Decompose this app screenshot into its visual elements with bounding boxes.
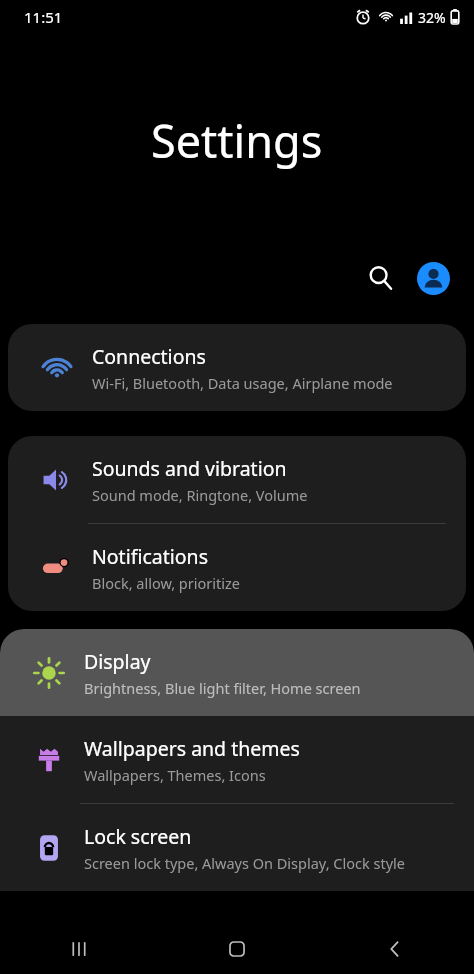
staticText: Connections — [92, 343, 206, 370]
button[interactable]: Search — [358, 255, 404, 301]
button[interactable]: Sounds and vibration — [8, 436, 466, 523]
button[interactable]: Notifications — [8, 524, 466, 611]
staticText: Wallpapers, Themes, Icons — [84, 765, 266, 785]
button[interactable]: Connections — [8, 324, 466, 411]
button[interactable]: Display — [0, 629, 474, 716]
staticText: Wallpapers and themes — [84, 735, 300, 762]
button[interactable]: Recent apps — [0, 924, 158, 974]
staticText: Notifications — [92, 543, 208, 570]
button[interactable]: Home — [158, 924, 316, 974]
staticText: Sound mode, Ringtone, Volume — [92, 485, 308, 505]
staticText: 11:51 — [24, 7, 63, 27]
button[interactable]: Back — [316, 924, 474, 974]
staticText: Display — [84, 648, 151, 675]
staticText: Brightness, Blue light filter, Home scre… — [84, 678, 361, 698]
staticText: Block, allow, prioritize — [92, 573, 240, 593]
staticText: Sounds and vibration — [92, 455, 287, 482]
staticText: Lock screen — [84, 823, 192, 850]
staticText: Wi-Fi, Bluetooth, Data usage, Airplane m… — [92, 373, 393, 393]
staticText: Settings — [151, 110, 323, 171]
staticText: Screen lock type, Always On Display, Clo… — [84, 853, 405, 873]
button[interactable]: Account — [410, 255, 456, 301]
staticText: 32% — [418, 8, 446, 27]
button[interactable]: Lock screen — [0, 804, 474, 891]
button[interactable]: Wallpapers and themes — [0, 716, 474, 803]
